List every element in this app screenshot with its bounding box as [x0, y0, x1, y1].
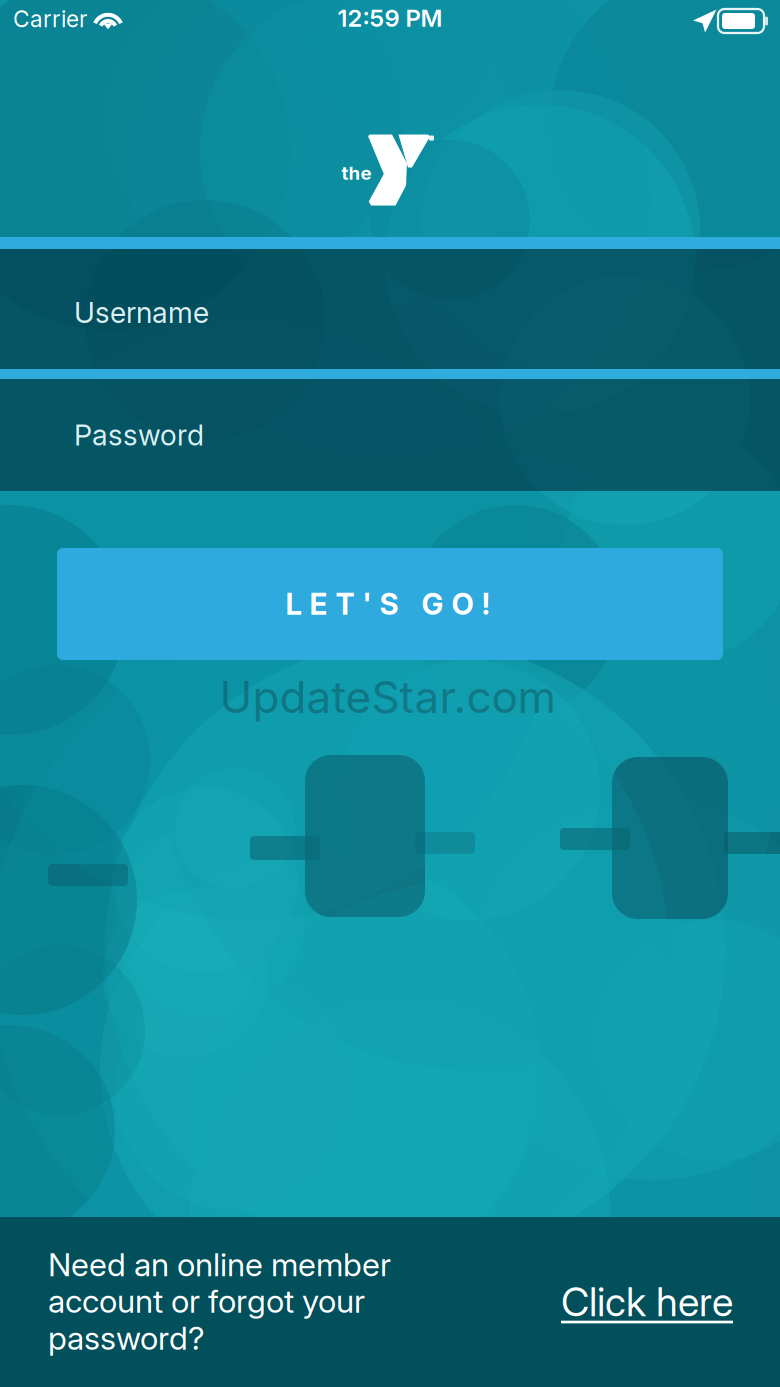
- staticText: account or forgot your: [48, 1282, 365, 1320]
- button[interactable]: Password: [0, 379, 780, 491]
- staticText: Password: [74, 418, 204, 452]
- staticText: Username: [74, 295, 209, 330]
- button[interactable]: Username: [0, 252, 780, 373]
- button[interactable]: Click here: [547, 1272, 747, 1332]
- staticText: the: [341, 162, 371, 184]
- button[interactable]: LET'S GO!: [57, 548, 723, 660]
- staticText: Click here: [561, 1278, 733, 1326]
- staticText: Need an online member: [48, 1245, 391, 1284]
- staticText: UpdateStar.com: [219, 670, 556, 724]
- staticText: password?: [48, 1319, 205, 1357]
- staticText: LET'S GO!: [285, 586, 490, 622]
- staticText: Carrier: [13, 5, 87, 33]
- staticText: 12:59 PM: [337, 3, 442, 32]
